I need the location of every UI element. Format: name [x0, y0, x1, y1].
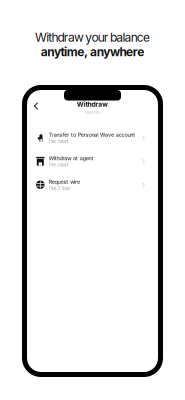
staticText: anytime, anywhere [41, 44, 144, 59]
button[interactable]: Transfer to Personal Wave account [27, 126, 158, 149]
staticText: Free, 3 days [49, 186, 70, 191]
staticText: Withdraw your balance [35, 30, 150, 44]
staticText: Transfer to Personal Wave account [49, 131, 135, 138]
staticText: Request wire [49, 178, 80, 185]
staticText: Withdraw at agent [49, 155, 93, 162]
button[interactable]: Back [30, 99, 42, 112]
staticText: Withdraw [77, 100, 108, 108]
button[interactable]: Withdraw at agent [27, 149, 158, 173]
staticText: Free, instant [49, 162, 68, 167]
staticText: Free, instant [49, 139, 68, 144]
staticText: 16,000F [85, 110, 100, 114]
button[interactable]: Request wire [27, 173, 158, 196]
